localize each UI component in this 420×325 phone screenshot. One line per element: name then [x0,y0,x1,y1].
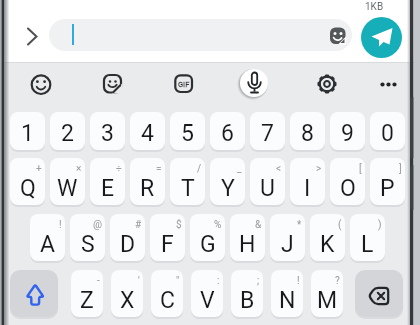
button[interactable]: U [250,158,285,205]
button[interactable]: Q [10,158,45,205]
staticText: ÷ [116,163,122,175]
staticText: G [200,231,216,258]
button[interactable]: L [350,214,385,261]
staticText: 2 [61,120,74,147]
staticText: M [317,287,338,314]
staticText: 9 [341,120,354,147]
button[interactable] [49,19,352,51]
staticText: K [320,231,335,258]
staticText: W [57,175,78,202]
staticText: R [140,175,155,202]
button[interactable]: G [190,214,225,261]
button[interactable] [361,17,402,58]
button[interactable] [234,63,274,103]
button[interactable]: A [30,214,65,261]
staticText: V [200,287,215,314]
button[interactable]: E [90,158,125,205]
staticText: J [281,231,294,258]
staticText: < [276,163,282,175]
staticText: Q [20,175,36,202]
button[interactable]: Z [71,270,103,317]
staticText: 4 [141,120,154,147]
staticText: U [260,175,275,202]
button[interactable]: F [150,214,185,261]
staticText: # [135,219,142,231]
button[interactable]: 9 [330,112,365,150]
staticText: _ [237,163,242,175]
staticText: E [101,175,115,202]
button[interactable] [374,70,403,99]
button[interactable]: H [230,214,265,261]
button[interactable]: K [310,214,345,261]
button[interactable] [310,67,344,101]
staticText: 5 [181,120,194,147]
staticText: × [76,163,82,175]
staticText: - [97,275,100,287]
staticText: $ [176,219,182,231]
button[interactable]: X [111,270,143,317]
staticText: 0 [381,120,394,147]
staticText: ! [59,219,62,231]
staticText: 1KB [365,1,384,13]
staticText: > [316,163,322,175]
staticText: S [81,231,95,258]
staticText: ! [297,275,300,287]
button[interactable]: GIF [168,68,200,100]
button[interactable]: 7 [250,112,285,150]
staticText: ( [338,219,342,231]
staticText: : [217,275,220,287]
button[interactable]: T [170,158,205,205]
button[interactable]: N [271,270,303,317]
button[interactable]: 1 [10,112,45,150]
button[interactable]: R [130,158,165,205]
staticText: @ [93,219,102,231]
button[interactable] [355,270,403,317]
staticText: Y [221,175,235,202]
staticText: I [304,175,311,202]
button[interactable]: V [191,270,223,317]
staticText: GIF [178,80,190,89]
staticText: T [181,175,195,202]
staticText: ? [335,275,340,287]
button[interactable] [25,68,57,100]
button[interactable] [10,270,58,317]
button[interactable]: B [231,270,263,317]
staticText: ; [257,275,260,287]
button[interactable]: J [270,214,305,261]
button[interactable]: 2 [50,112,85,150]
staticText: [ [359,163,362,175]
staticText: 3 [101,120,114,147]
button[interactable] [96,68,128,100]
staticText: / [197,163,202,175]
button[interactable]: 5 [170,112,205,150]
staticText: 7 [261,120,274,147]
button[interactable]: 8 [290,112,325,150]
button[interactable]: 3 [90,112,125,150]
button[interactable]: 0 [370,112,405,150]
button[interactable]: I [290,158,325,205]
staticText: O [340,175,356,202]
button[interactable]: D [110,214,145,261]
staticText: H [239,231,256,258]
button[interactable]: S [70,214,105,261]
staticText: = [156,163,162,175]
button[interactable] [22,24,44,48]
staticText: F [161,231,174,258]
staticText: D [120,231,136,258]
staticText: Z [80,287,94,314]
button[interactable]: W [50,158,85,205]
staticText: X [120,287,135,314]
button[interactable]: C [151,270,183,317]
staticText: + [36,163,42,175]
button[interactable]: O [330,158,365,205]
staticText: L [361,231,374,258]
staticText: B [240,287,255,314]
button[interactable]: Y [210,158,245,205]
staticText: % [214,219,222,231]
staticText: N [279,287,296,314]
button[interactable] [329,27,347,45]
button[interactable]: 6 [210,112,245,150]
button[interactable]: M [311,270,343,317]
button[interactable]: 4 [130,112,165,150]
button[interactable]: P [370,158,405,205]
